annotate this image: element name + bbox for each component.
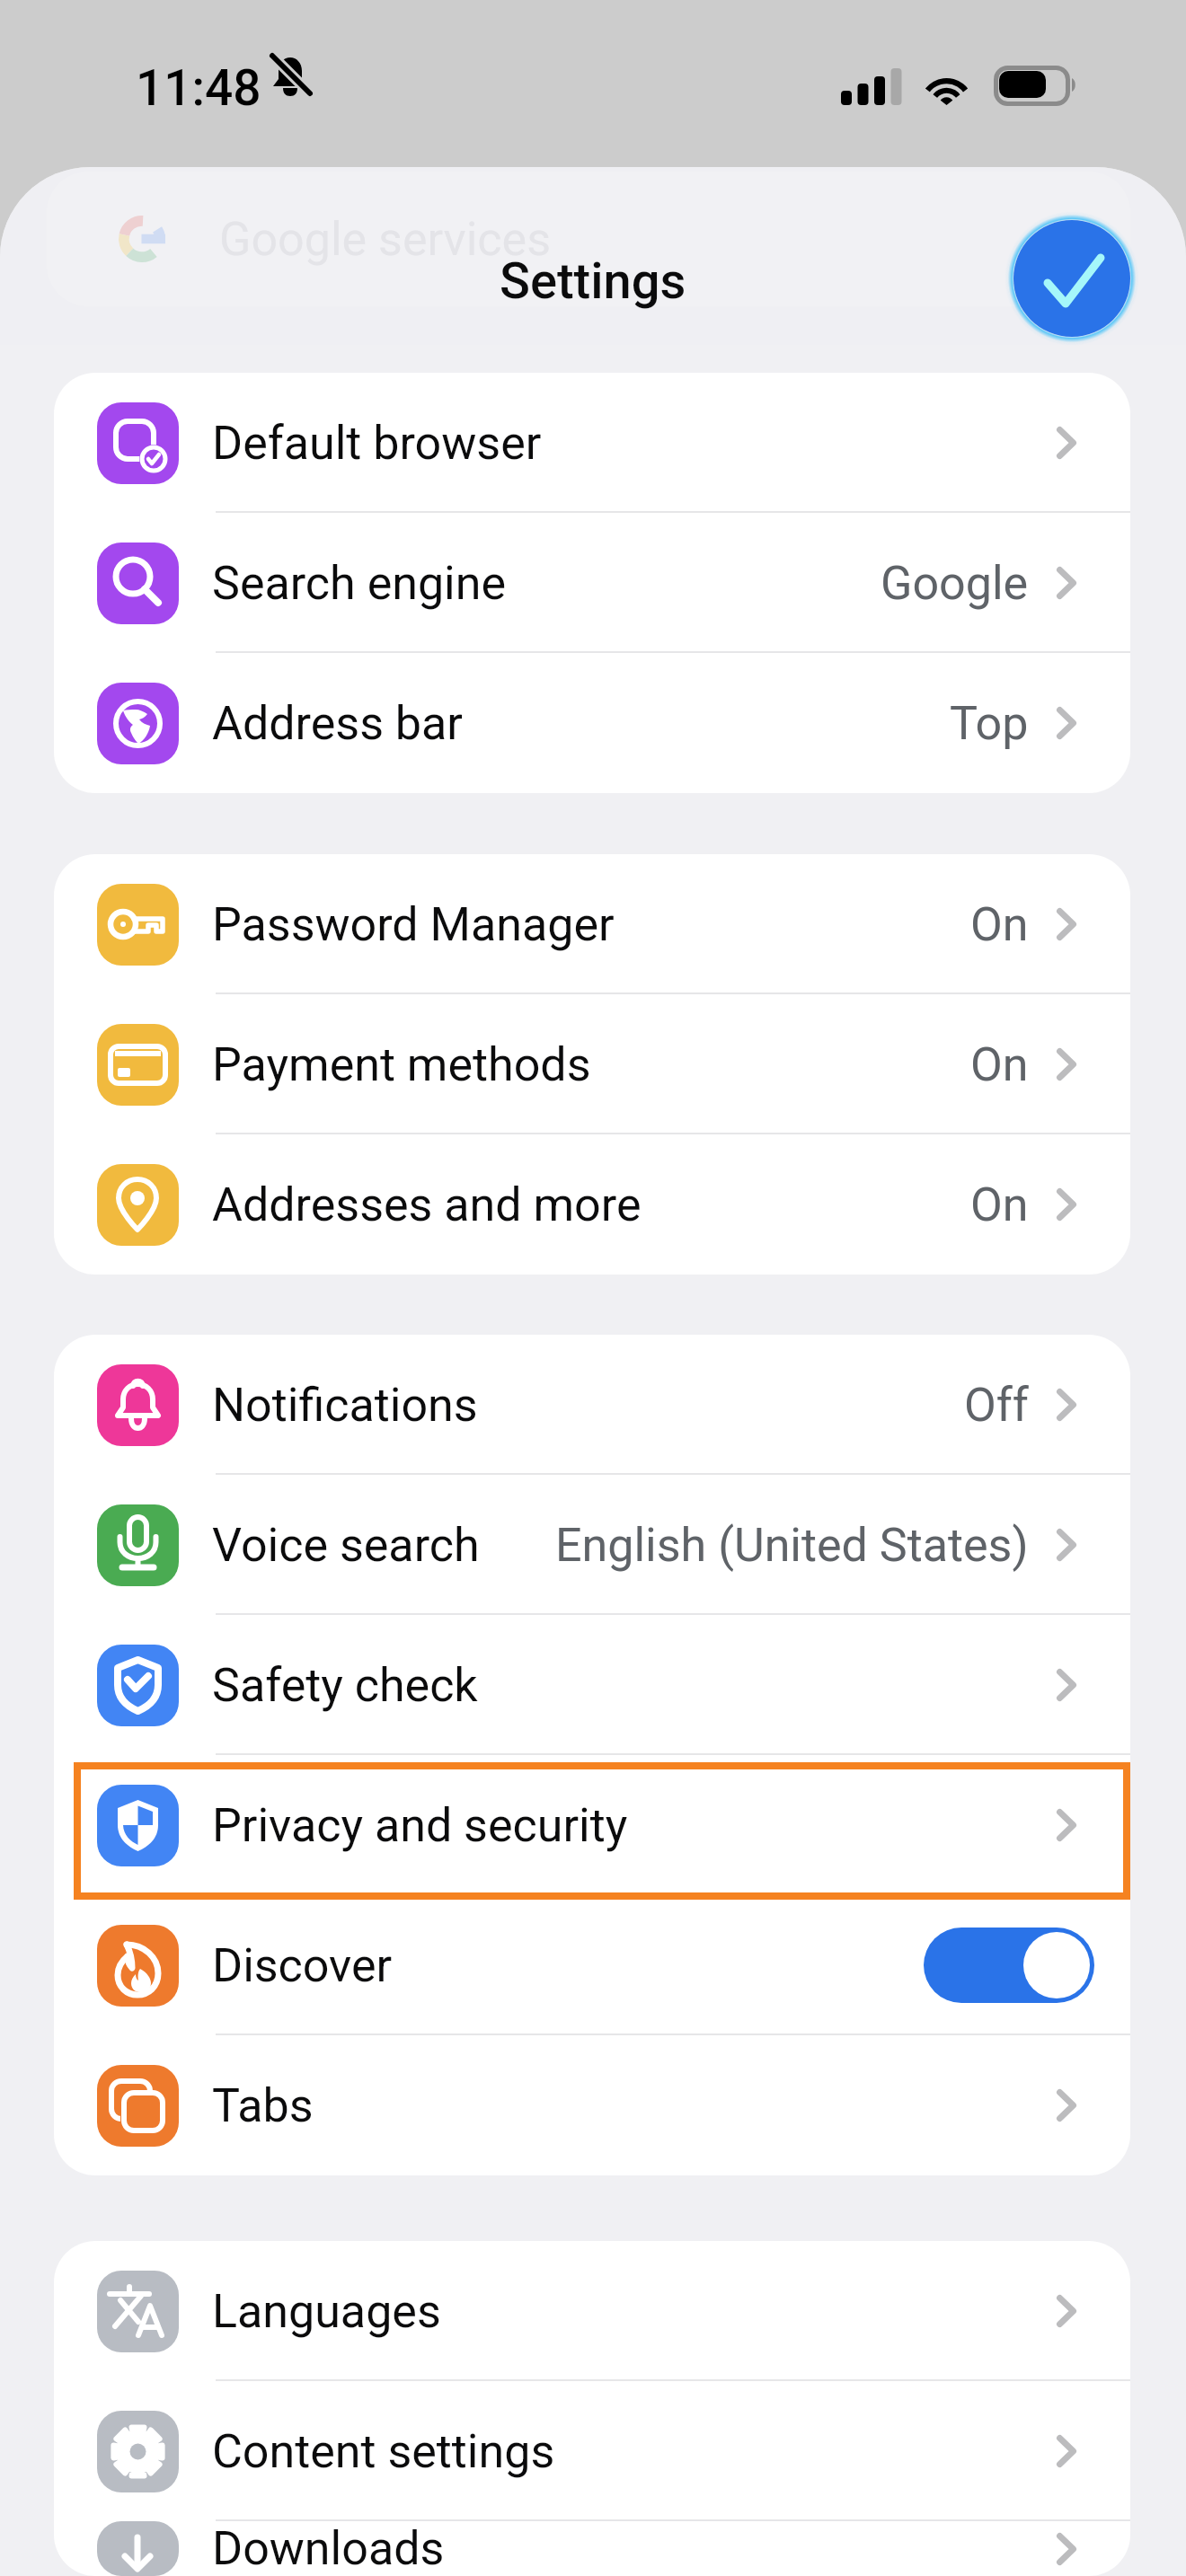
staticText: Addresses and more <box>212 1178 642 1232</box>
button[interactable]: Privacy and security <box>54 1755 1130 1895</box>
staticText: Privacy and security <box>212 1798 628 1853</box>
staticText: Discover <box>212 1938 393 1993</box>
staticText: Safety check <box>212 1658 478 1713</box>
staticText: Off <box>964 1378 1029 1433</box>
button[interactable]: Payment methods <box>54 994 1130 1134</box>
button[interactable]: Google services <box>47 172 1130 306</box>
button[interactable]: Addresses and more <box>54 1134 1130 1275</box>
button[interactable]: Notifications <box>54 1335 1130 1475</box>
staticText: On <box>970 1178 1029 1232</box>
staticText: On <box>970 1037 1029 1092</box>
button[interactable]: Discover toggle <box>924 1928 1094 2003</box>
button[interactable]: Password Manager <box>54 854 1130 994</box>
button[interactable]: Discover <box>54 1895 1130 2035</box>
button[interactable]: Default browser <box>54 373 1130 513</box>
staticText: Payment methods <box>212 1037 591 1092</box>
staticText: Address bar <box>212 696 463 751</box>
staticText: Notifications <box>212 1378 478 1433</box>
button[interactable]: Downloads <box>54 2521 1130 2576</box>
staticText: Tabs <box>212 2078 314 2133</box>
button[interactable]: Search engine <box>54 513 1130 653</box>
staticText: Downloads <box>212 2521 445 2576</box>
staticText: Google <box>881 556 1029 611</box>
staticText: Languages <box>212 2284 441 2339</box>
staticText: English (United States) <box>555 1518 1029 1573</box>
staticText: Password Manager <box>212 897 615 952</box>
button[interactable]: Address bar <box>54 653 1130 793</box>
staticText: Content settings <box>212 2424 555 2479</box>
staticText: Top <box>950 696 1029 751</box>
staticText: On <box>970 897 1029 952</box>
staticText: 11:48 <box>136 59 261 117</box>
button[interactable]: Content settings <box>54 2381 1130 2521</box>
staticText: Google services <box>219 212 552 267</box>
staticText: Search engine <box>212 556 507 611</box>
staticText: Default browser <box>212 416 542 471</box>
staticText: Voice search <box>212 1518 480 1573</box>
button[interactable]: Safety check <box>54 1615 1130 1755</box>
button[interactable]: Voice search <box>54 1475 1130 1615</box>
button[interactable]: Languages <box>54 2241 1130 2381</box>
button[interactable]: Tabs <box>54 2035 1130 2175</box>
button[interactable]: Settings <box>500 251 686 311</box>
button[interactable]: Done <box>1013 220 1130 337</box>
